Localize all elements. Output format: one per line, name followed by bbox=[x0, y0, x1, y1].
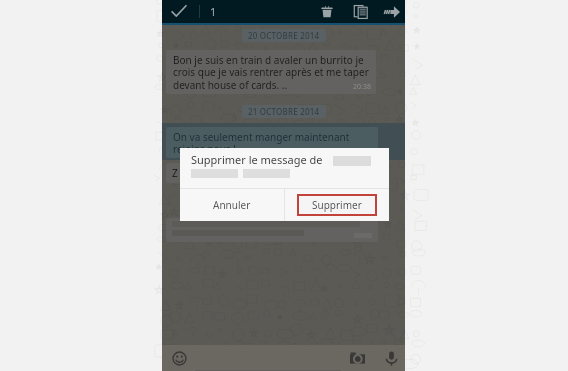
button[interactable]: Done bbox=[168, 1, 190, 23]
button[interactable]: Annuler bbox=[180, 189, 284, 221]
staticText: 21 OCTOBRE 2014 bbox=[248, 106, 320, 117]
button[interactable]: Copy bbox=[351, 2, 371, 22]
staticText: Annuler bbox=[213, 198, 251, 212]
staticText: On va seulement manger maintenant rejoin… bbox=[173, 130, 373, 156]
button[interactable]: Camera bbox=[347, 348, 367, 368]
button[interactable]: Voice message bbox=[381, 348, 401, 368]
staticText: Bon je suis en train d avaler un burrito… bbox=[173, 53, 371, 92]
button[interactable]: Emoji bbox=[169, 348, 189, 368]
button[interactable]: Delete bbox=[317, 2, 337, 22]
staticText: Z bbox=[172, 166, 178, 180]
button[interactable]: Forward bbox=[382, 2, 402, 22]
staticText: Supprimer bbox=[312, 198, 362, 212]
staticText: 20 OCTOBRE 2014 bbox=[248, 30, 320, 41]
staticText: 20:38 bbox=[353, 82, 371, 92]
staticText: Supprimer le message de bbox=[191, 152, 323, 167]
staticText: 1 bbox=[210, 4, 217, 19]
button[interactable]: Supprimer bbox=[285, 189, 389, 221]
